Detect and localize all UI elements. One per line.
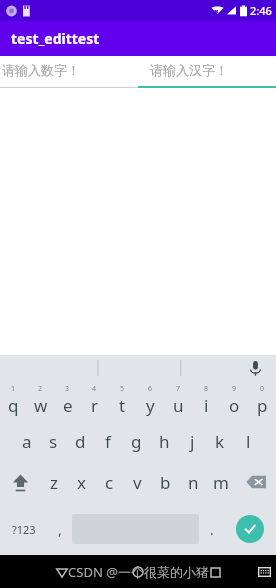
staticText: ?123 [12, 522, 36, 537]
button[interactable]: 3 [54, 381, 81, 421]
button[interactable]: v [123, 461, 151, 503]
button[interactable]: 2 [27, 381, 54, 421]
staticText: h [159, 430, 170, 453]
button[interactable]: Home [123, 557, 153, 587]
staticText: 8 [204, 384, 209, 394]
button[interactable]: k [206, 421, 234, 461]
staticText: y [146, 394, 155, 417]
staticText: test_edittest [11, 29, 100, 48]
button[interactable]: m [207, 461, 235, 503]
staticText: c [105, 471, 114, 494]
button[interactable]: f [94, 421, 122, 461]
staticText: f [105, 430, 111, 453]
button[interactable]: z [40, 461, 67, 503]
button[interactable]: ?123 [0, 503, 47, 555]
staticText: j [190, 430, 195, 453]
button[interactable]: b [151, 461, 179, 503]
staticText: 4 [92, 384, 97, 394]
staticText: e [63, 394, 73, 417]
button[interactable]: c [95, 461, 123, 503]
button[interactable]: Backspace [235, 461, 276, 503]
staticText: q [8, 394, 19, 417]
button[interactable]: 9 [220, 381, 248, 421]
button[interactable]: . [199, 503, 224, 555]
button[interactable]: l [234, 421, 262, 461]
button[interactable]: a [13, 421, 40, 461]
staticText: p [257, 394, 268, 417]
staticText: 9 [232, 384, 237, 394]
staticText: k [215, 430, 225, 453]
button[interactable]: j [178, 421, 206, 461]
staticText: t [119, 394, 126, 417]
staticText: u [173, 394, 184, 417]
staticText: v [133, 471, 142, 494]
button[interactable]: 8 [192, 381, 220, 421]
button[interactable]: Voice input [244, 357, 266, 379]
button[interactable]: 1 [0, 381, 27, 421]
staticText: i [204, 394, 209, 417]
staticText: 1 [11, 384, 16, 394]
button[interactable]: x [67, 461, 95, 503]
staticText: r [91, 394, 99, 417]
button[interactable]: g [122, 421, 150, 461]
staticText: 请输入汉字！ [150, 62, 228, 78]
button[interactable]: Recents [200, 557, 230, 587]
staticText: 0 [260, 384, 265, 394]
staticText: z [50, 471, 58, 494]
button[interactable]: Enter [236, 515, 264, 543]
staticText: 5 [120, 384, 125, 394]
button[interactable]: 0 [248, 381, 276, 421]
staticText: g [131, 430, 142, 453]
staticText: m [213, 471, 229, 494]
staticText: 6 [148, 384, 153, 394]
staticText: 2 [38, 384, 43, 394]
button[interactable]: d [67, 421, 94, 461]
button[interactable]: 6 [136, 381, 164, 421]
button[interactable]: Back [47, 557, 77, 587]
button[interactable]: Shift [0, 461, 40, 503]
staticText: w [34, 394, 48, 417]
staticText: 请输入数字！ [2, 62, 80, 78]
staticText: l [246, 430, 251, 453]
staticText: d [75, 430, 86, 453]
button[interactable]: 5 [108, 381, 136, 421]
staticText: . [210, 520, 214, 539]
button[interactable]: n [179, 461, 207, 503]
button[interactable]: 4 [81, 381, 108, 421]
staticText: 7 [176, 384, 181, 394]
button[interactable]: 请输入汉字！ [138, 56, 276, 88]
staticText: CSDN @一个很菜的小猪 [68, 563, 209, 581]
button[interactable]: h [150, 421, 178, 461]
staticText: 2:46 [250, 3, 272, 18]
staticText: o [229, 394, 240, 417]
staticText: , [58, 520, 62, 539]
staticText: s [49, 430, 58, 453]
button[interactable]: 请输入数字！ [0, 56, 138, 88]
staticText: a [22, 430, 32, 453]
button[interactable]: , [47, 503, 72, 555]
staticText: n [188, 471, 199, 494]
button[interactable]: test_edittest [0, 21, 276, 56]
staticText: 3 [65, 384, 70, 394]
staticText: x [77, 471, 86, 494]
staticText: b [160, 471, 171, 494]
button[interactable]: 7 [164, 381, 192, 421]
button[interactable]: s [40, 421, 67, 461]
